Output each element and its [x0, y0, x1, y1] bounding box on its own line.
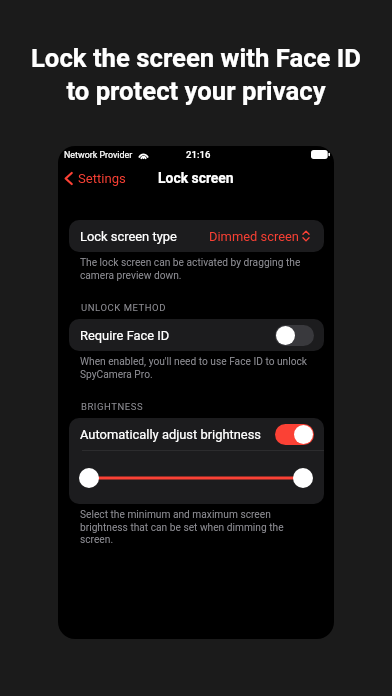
staticText: Select the minimum and maximum screen br… — [80, 509, 315, 545]
staticText: Lock the screen with Face ID to protect … — [0, 43, 392, 107]
button[interactable]: Automatically adjust brightness — [275, 424, 314, 445]
staticText: Automatically adjust brightness — [80, 427, 261, 442]
staticText: UNLOCK METHOD — [81, 302, 166, 313]
button[interactable]: Automatically adjust brightness — [69, 418, 324, 450]
staticText: Lock screen — [158, 170, 234, 186]
other: Change lock screen type — [302, 230, 310, 242]
staticText: The lock screen can be activated by drag… — [80, 257, 315, 281]
staticText: BRIGHTNESS — [81, 401, 144, 412]
staticText: Network Provider — [64, 150, 133, 160]
button[interactable]: Lock screen type — [69, 220, 324, 252]
staticText: Settings — [78, 171, 126, 186]
button[interactable]: Back to Settings — [58, 168, 132, 189]
staticText: When enabled, you'll need to use Face ID… — [80, 356, 315, 380]
button[interactable]: Brightness range — [79, 468, 313, 488]
button[interactable]: Require Face ID — [275, 325, 314, 346]
staticText: Dimmed screen — [209, 229, 299, 244]
staticText: 21:16 — [186, 149, 211, 160]
button[interactable]: Require Face ID — [69, 319, 324, 351]
staticText: Require Face ID — [80, 328, 170, 343]
staticText: Lock screen type — [80, 229, 177, 244]
